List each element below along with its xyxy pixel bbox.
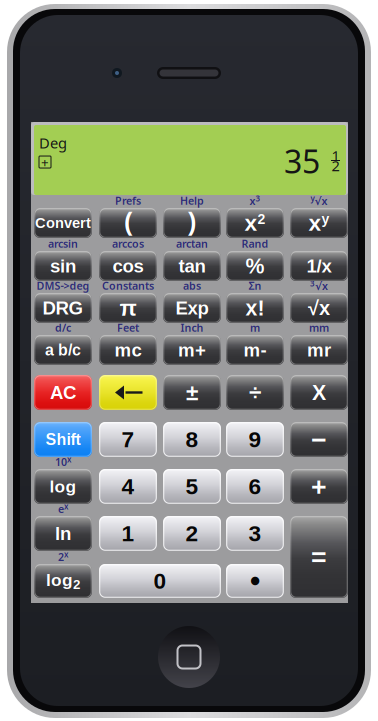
staticText: xy: [308, 211, 329, 235]
staticText: a b/c: [45, 341, 81, 359]
staticText: Help: [180, 193, 204, 208]
staticText: 2: [331, 156, 339, 175]
staticText: AC: [50, 382, 76, 403]
staticText: +: [41, 153, 49, 171]
staticText: mc: [114, 340, 141, 360]
staticText: %: [245, 254, 264, 278]
staticText: −: [311, 425, 327, 454]
staticText: =: [311, 542, 327, 572]
button[interactable]: AC: [34, 375, 92, 410]
staticText: Exp: [175, 298, 208, 318]
staticText: Deg: [39, 133, 67, 152]
staticText: 1: [121, 521, 134, 546]
staticText: 5: [185, 474, 198, 499]
staticText: ): [188, 208, 196, 236]
staticText: 1: [331, 146, 339, 165]
button[interactable]: cos: [99, 251, 157, 281]
button[interactable]: ): [163, 208, 221, 238]
staticText: x2: [244, 211, 265, 235]
button[interactable]: %: [226, 251, 284, 281]
button[interactable]: 2: [163, 516, 221, 551]
staticText: Constants: [102, 278, 154, 293]
staticText: DRG: [42, 298, 83, 318]
button[interactable]: m-: [226, 335, 284, 365]
button[interactable]: Exp: [163, 293, 221, 323]
staticText: √x: [308, 297, 330, 319]
staticText: sin: [50, 256, 76, 276]
button[interactable]: mr: [290, 335, 348, 365]
button[interactable]: ÷: [226, 375, 284, 410]
staticText: abs: [183, 278, 201, 293]
staticText: 6: [248, 474, 261, 499]
staticText: Rand: [241, 236, 268, 251]
button[interactable]: mc: [99, 335, 157, 365]
button[interactable]: 1: [99, 516, 157, 551]
staticText: 8: [185, 427, 198, 452]
button[interactable]: a b/c: [34, 335, 92, 365]
staticText: ÷: [249, 380, 261, 405]
button[interactable]: (: [99, 208, 157, 238]
button[interactable]: sin: [34, 251, 92, 281]
button[interactable]: [99, 375, 157, 410]
staticText: d/c: [55, 320, 71, 335]
button[interactable]: 8: [163, 422, 221, 457]
staticText: arcsin: [48, 236, 78, 251]
button[interactable]: X: [290, 375, 348, 410]
staticText: x!: [245, 296, 264, 320]
staticText: DMS->deg: [36, 278, 89, 293]
staticText: m-: [243, 340, 266, 360]
button[interactable]: 3: [226, 516, 284, 551]
staticText: x3: [249, 193, 260, 208]
staticText: Prefs: [115, 193, 141, 208]
staticText: 1/x: [306, 256, 331, 276]
staticText: cos: [112, 256, 143, 276]
staticText: 4: [121, 474, 134, 499]
staticText: tan: [178, 256, 205, 276]
button[interactable]: =: [290, 516, 348, 598]
button[interactable]: 4: [99, 469, 157, 504]
button[interactable]: 0: [99, 564, 221, 598]
staticText: ±: [186, 380, 198, 405]
button[interactable]: Shift: [34, 422, 92, 457]
button[interactable]: 1/x: [290, 251, 348, 281]
button[interactable]: −: [290, 422, 348, 457]
staticText: π: [119, 295, 136, 321]
staticText: m: [250, 320, 260, 335]
button[interactable]: Convert: [34, 208, 92, 238]
staticText: +: [311, 472, 327, 501]
staticText: log2: [46, 570, 80, 592]
button[interactable]: ±: [163, 375, 221, 410]
staticText: y√x: [310, 193, 327, 208]
button[interactable]: •: [226, 564, 284, 598]
button[interactable]: x2: [226, 208, 284, 238]
button[interactable]: m+: [163, 335, 221, 365]
button[interactable]: log2: [34, 564, 92, 598]
staticText: (: [124, 208, 132, 236]
staticText: 2: [185, 521, 198, 546]
staticText: X: [312, 381, 326, 404]
button[interactable]: 7: [99, 422, 157, 457]
button[interactable]: π: [99, 293, 157, 323]
button[interactable]: ln: [34, 516, 92, 551]
staticText: •: [250, 565, 260, 597]
button[interactable]: 5: [163, 469, 221, 504]
staticText: ex: [58, 501, 68, 516]
staticText: Convert: [35, 215, 91, 231]
staticText: 3: [248, 521, 261, 546]
staticText: mm: [309, 320, 329, 335]
button[interactable]: √x: [290, 293, 348, 323]
button[interactable]: 9: [226, 422, 284, 457]
button[interactable]: 6: [226, 469, 284, 504]
staticText: mr: [307, 340, 331, 360]
staticText: arccos: [112, 236, 144, 251]
staticText: log: [49, 477, 76, 496]
staticText: 3√x: [310, 278, 328, 293]
staticText: 35: [284, 140, 320, 182]
staticText: Shift: [45, 431, 80, 448]
button[interactable]: +: [290, 469, 348, 504]
button[interactable]: xy: [290, 208, 348, 238]
button[interactable]: x!: [226, 293, 284, 323]
button[interactable]: log: [34, 469, 92, 504]
button[interactable]: tan: [163, 251, 221, 281]
button[interactable]: DRG: [34, 293, 92, 323]
